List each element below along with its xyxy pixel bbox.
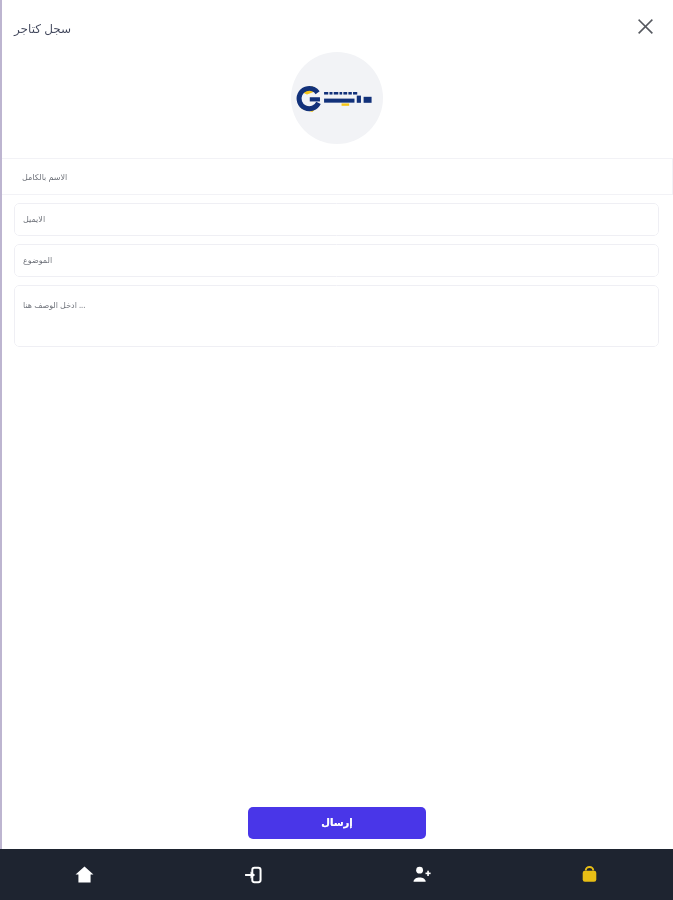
button[interactable]: Login bbox=[169, 849, 337, 900]
button[interactable]: إرسال bbox=[248, 807, 426, 839]
staticText: الايميل bbox=[23, 215, 46, 224]
staticText: الاسم بالكامل bbox=[22, 171, 68, 182]
staticText: ادخل الوصف هنا ... bbox=[23, 299, 86, 310]
button[interactable]: Cart bbox=[505, 849, 673, 900]
button[interactable]: Home bbox=[0, 849, 169, 900]
button[interactable]: الايميل bbox=[14, 203, 659, 236]
staticText: سجل كتاجر bbox=[14, 20, 72, 36]
button[interactable]: الموضوع bbox=[14, 244, 659, 277]
button[interactable]: Register bbox=[337, 849, 505, 900]
staticText: إرسال bbox=[321, 817, 353, 829]
button[interactable]: Close bbox=[627, 8, 663, 44]
button[interactable]: الاسم بالكامل bbox=[0, 158, 673, 195]
staticText: الموضوع bbox=[23, 256, 53, 265]
button[interactable]: ادخل الوصف هنا ... bbox=[14, 285, 659, 347]
